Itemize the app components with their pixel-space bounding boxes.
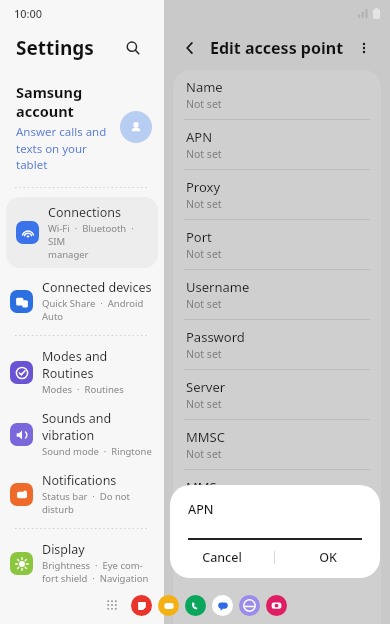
staticText: Not set (186, 547, 222, 561)
staticText: Quick Share · Android Auto (42, 297, 144, 323)
staticText: MMS proxy (186, 478, 255, 496)
button[interactable]: My Files (158, 595, 179, 616)
staticText: Not set (186, 497, 222, 511)
button[interactable]: More options (350, 34, 378, 62)
button[interactable]: Internet (239, 595, 260, 616)
button[interactable]: Cancel (170, 540, 274, 574)
staticText: Cancel (202, 549, 242, 566)
button[interactable]: Notifications (0, 465, 164, 523)
staticText: APN (186, 128, 213, 146)
staticText: Settings (16, 35, 118, 61)
staticText: Answer calls and texts on your tablet (16, 124, 107, 172)
staticText: Samsung account (16, 82, 83, 121)
staticText: Status bar · Do not disturb (42, 490, 131, 516)
button[interactable]: MMS proxy (173, 469, 381, 519)
staticText: Notifications (42, 472, 117, 489)
staticText: Connections (48, 204, 121, 221)
button[interactable]: Port (173, 219, 381, 269)
staticText: Username (186, 278, 250, 296)
button[interactable]: Phone (185, 595, 206, 616)
staticText: Brightness · Eye com- fort shield · Navi… (42, 559, 149, 585)
staticText: Edit access point (210, 37, 350, 59)
button[interactable]: Messages (212, 595, 233, 616)
staticText: Sound mode · Ringtone (42, 445, 152, 458)
staticText: MMS port (186, 528, 247, 546)
button[interactable]: Connected devices (0, 272, 164, 330)
button[interactable]: Proxy (173, 169, 381, 219)
button[interactable]: Name (173, 70, 381, 119)
staticText: Port (186, 228, 212, 246)
button[interactable]: Samsung Notes (131, 595, 152, 616)
staticText: OK (319, 549, 337, 566)
button[interactable]: Search (118, 33, 148, 63)
button[interactable]: Sounds and vibration (0, 403, 164, 465)
staticText: 10:00 (14, 6, 43, 21)
staticText: Modes and Routines (42, 348, 108, 382)
staticText: Not set (186, 297, 222, 311)
staticText: Wi-Fi · Bluetooth · SIM manager (48, 222, 150, 261)
button[interactable]: Modes and Routines (0, 341, 164, 403)
button[interactable]: Server (173, 369, 381, 419)
button[interactable]: Back (176, 34, 204, 62)
staticText: Not set (186, 447, 222, 461)
staticText: Modes · Routines (42, 383, 124, 396)
button[interactable]: Username (173, 269, 381, 319)
staticText: Not set (186, 197, 222, 211)
staticText: Not set (186, 347, 222, 361)
button[interactable]: Samsung account (0, 78, 164, 182)
staticText: Not set (186, 147, 222, 161)
staticText: Not set (186, 397, 222, 411)
button[interactable]: Password (173, 319, 381, 369)
staticText: Display (42, 541, 85, 558)
button[interactable]: Connections (6, 197, 158, 268)
button[interactable]: MMS port (173, 519, 381, 569)
staticText: Name (186, 78, 223, 96)
button[interactable]: APN (173, 119, 381, 169)
button[interactable]: Display (0, 534, 164, 592)
button[interactable]: MMSC (173, 419, 381, 469)
staticText: Connected devices (42, 279, 152, 296)
staticText: Sounds and vibration (42, 410, 112, 444)
button[interactable]: OK (275, 540, 380, 574)
staticText: Not set (186, 97, 222, 111)
staticText: MMSC (186, 428, 225, 446)
staticText: Server (186, 378, 226, 396)
staticText: Password (186, 328, 245, 346)
button[interactable]: All apps (101, 594, 123, 616)
staticText: APN (188, 501, 214, 518)
button[interactable]: Camera (266, 595, 287, 616)
staticText: Not set (186, 247, 222, 261)
staticText: Proxy (186, 178, 221, 196)
